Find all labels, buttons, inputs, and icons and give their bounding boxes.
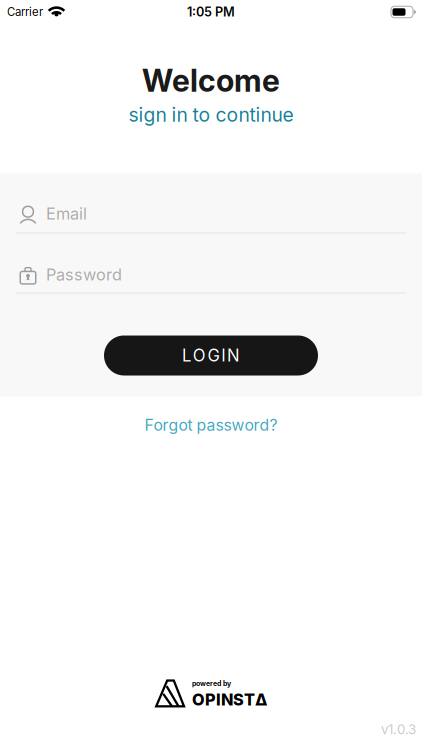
staticText: O [193, 345, 206, 366]
staticText: Email [46, 204, 87, 223]
staticText: Carrier [7, 5, 43, 19]
staticText: sign in to continue [128, 103, 293, 126]
staticText: Welcome [142, 62, 280, 99]
staticText: Forgot password? [144, 415, 277, 434]
staticText: powered by [192, 679, 231, 688]
staticText: N [227, 345, 240, 366]
staticText: v1.0.3 [381, 721, 416, 737]
staticText: 1:05 PM [187, 4, 235, 20]
button[interactable]: Password [0, 264, 422, 293]
staticText: L [182, 345, 191, 366]
staticText: Password [46, 265, 122, 284]
staticText: I [221, 345, 225, 366]
staticText: G [207, 345, 219, 366]
button[interactable]: Email [0, 203, 422, 233]
staticText: OPINSTΔ [192, 690, 267, 709]
button[interactable]: Forgot password? [144, 415, 277, 434]
button[interactable]: L [104, 335, 318, 375]
